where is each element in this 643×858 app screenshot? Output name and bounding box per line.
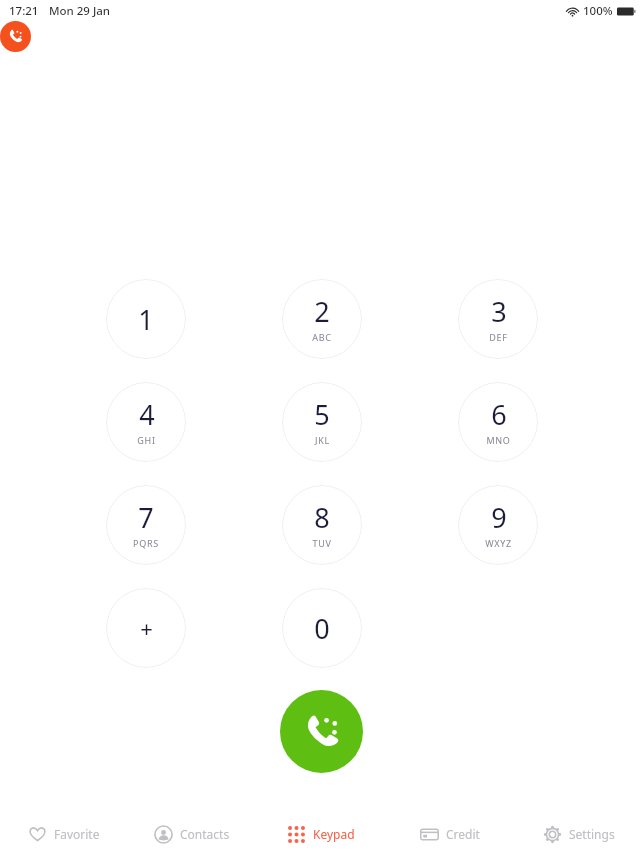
button[interactable]: Keypad: [256, 810, 385, 858]
staticText: MNO: [486, 434, 511, 446]
staticText: 3: [491, 293, 507, 330]
staticText: 6: [491, 396, 507, 433]
button[interactable]: +: [106, 588, 186, 668]
staticText: Mon 29 Jan: [49, 3, 111, 19]
staticText: 9: [491, 499, 507, 536]
staticText: Keypad: [313, 826, 355, 842]
staticText: 7: [138, 499, 154, 536]
staticText: ABC: [312, 331, 332, 343]
staticText: 17:21: [9, 3, 39, 19]
staticText: DEF: [489, 331, 508, 343]
staticText: Favorite: [54, 826, 100, 842]
button[interactable]: 5: [282, 382, 362, 462]
button[interactable]: 3: [458, 279, 538, 359]
button[interactable]: Settings: [514, 810, 643, 858]
button[interactable]: 6: [458, 382, 538, 462]
staticText: Contacts: [180, 826, 230, 842]
button[interactable]: 7: [106, 485, 186, 565]
staticText: Credit: [446, 826, 480, 842]
button[interactable]: 8: [282, 485, 362, 565]
staticText: 8: [314, 499, 330, 536]
staticText: 0: [314, 610, 330, 647]
staticText: +: [140, 613, 153, 643]
staticText: GHI: [137, 434, 156, 446]
button[interactable]: Contacts: [128, 810, 256, 858]
staticText: PQRS: [133, 537, 159, 549]
staticText: 5: [314, 396, 330, 433]
button[interactable]: Favorite: [0, 810, 128, 858]
staticText: TUV: [312, 537, 332, 549]
staticText: 2: [314, 293, 330, 330]
staticText: 1: [138, 301, 154, 338]
button[interactable]: 2: [282, 279, 362, 359]
staticText: JKL: [315, 434, 330, 446]
staticText: 4: [139, 396, 155, 433]
staticText: 100%: [583, 3, 613, 19]
button[interactable]: Call history: [0, 21, 31, 52]
button[interactable]: 9: [458, 485, 538, 565]
button[interactable]: 4: [106, 382, 186, 462]
staticText: WXYZ: [485, 537, 512, 549]
button[interactable]: Credit: [385, 810, 514, 858]
button[interactable]: 1: [106, 279, 186, 359]
staticText: Settings: [569, 826, 615, 842]
button[interactable]: Call: [280, 690, 363, 773]
button[interactable]: 0: [282, 588, 362, 668]
